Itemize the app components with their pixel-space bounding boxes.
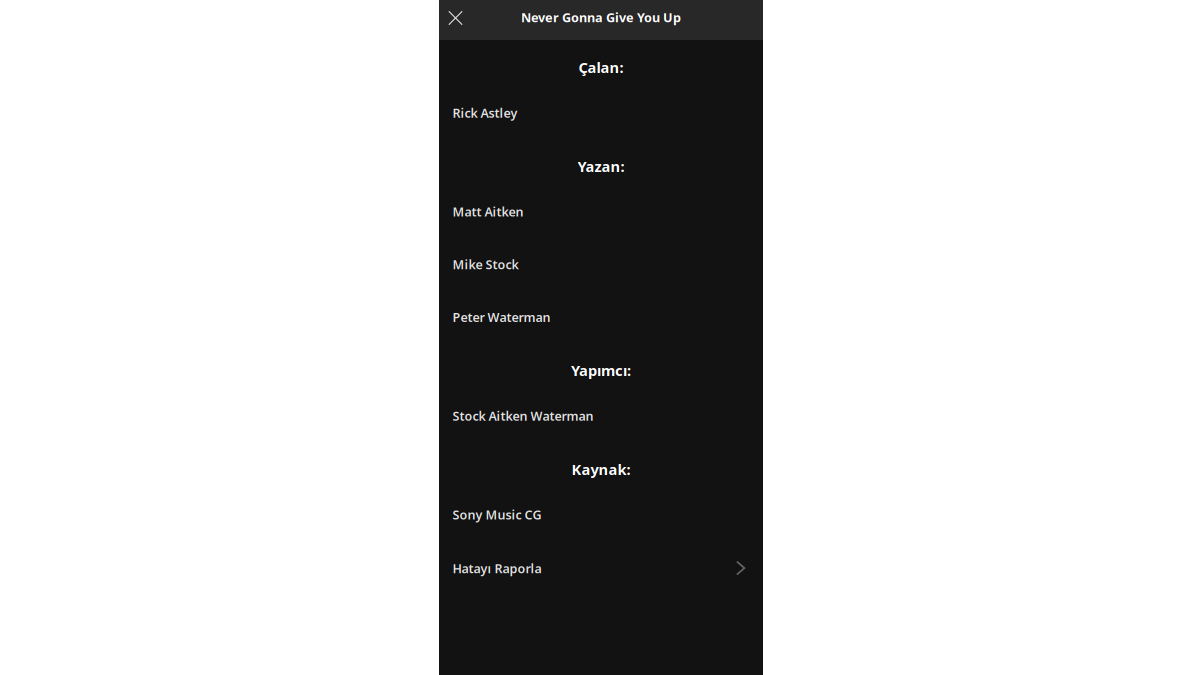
staticText: Çalan: bbox=[578, 57, 623, 77]
staticText: Peter Waterman bbox=[452, 309, 550, 326]
button[interactable]: Hatayı Raporla bbox=[439, 558, 763, 578]
staticText: Yazan: bbox=[577, 156, 624, 176]
staticText: Yapımcı: bbox=[571, 360, 631, 380]
button[interactable]: Close bbox=[439, 3, 472, 33]
staticText: Hatayı Raporla bbox=[452, 560, 541, 577]
staticText: Kaynak: bbox=[571, 459, 630, 479]
staticText: Mike Stock bbox=[452, 256, 518, 273]
staticText: Stock Aitken Waterman bbox=[452, 407, 593, 424]
staticText: Sony Music CG bbox=[452, 506, 541, 523]
staticText: Never Gonna Give You Up bbox=[521, 9, 681, 26]
staticText: Matt Aitken bbox=[452, 203, 523, 220]
staticText: Rick Astley bbox=[452, 104, 517, 121]
